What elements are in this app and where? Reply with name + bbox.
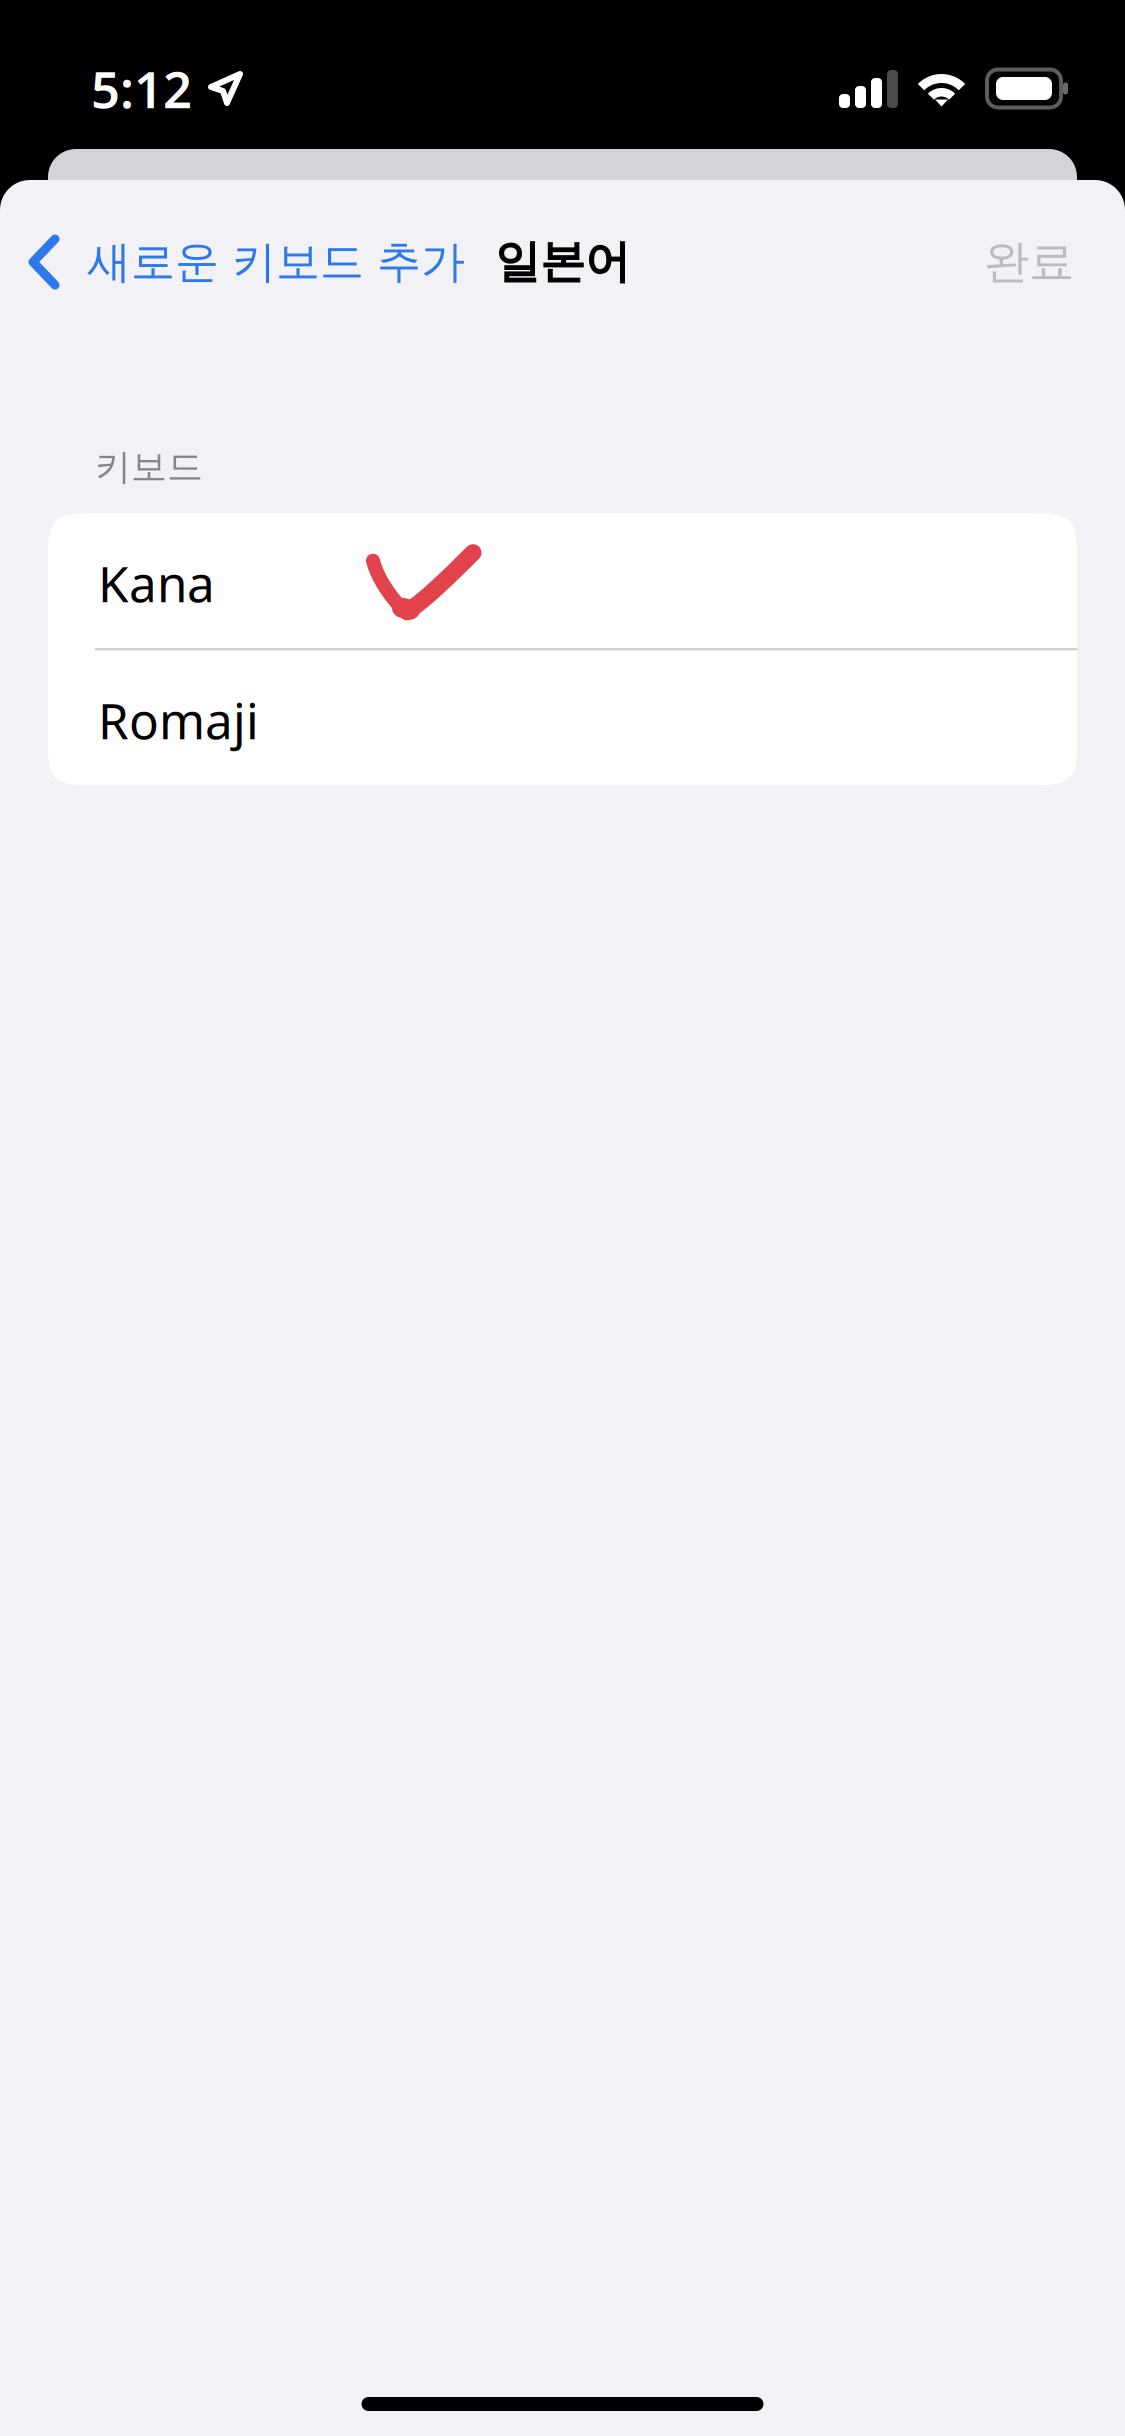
staticText: Kana (98, 550, 215, 616)
staticText: 키보드 (95, 445, 203, 489)
staticText: Romaji (98, 687, 259, 753)
button[interactable]: Romaji (48, 650, 1077, 785)
button[interactable]: 완료 (958, 180, 1100, 344)
staticText: 새로운 키보드 추가 (87, 235, 465, 289)
staticText: 5:12 (91, 55, 192, 122)
button[interactable]: Kana (48, 513, 1077, 648)
button[interactable]: 새로운 키보드 추가 (0, 180, 475, 344)
staticText: 완료 (984, 234, 1074, 290)
staticText: 일본어 (495, 234, 630, 290)
